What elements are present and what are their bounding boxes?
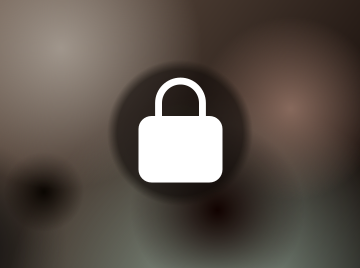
button[interactable]: Locked bbox=[0, 0, 360, 268]
